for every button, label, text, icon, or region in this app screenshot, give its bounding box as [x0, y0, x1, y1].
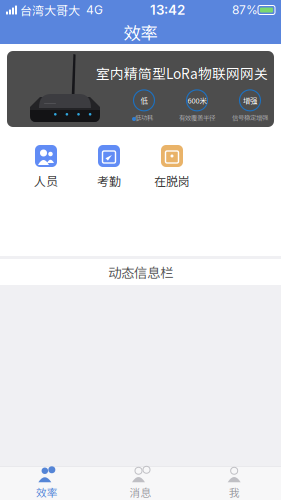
staticText: 低	[140, 95, 147, 106]
staticText: 信号稳定增强	[232, 113, 268, 122]
button[interactable]: 效率	[0, 463, 94, 500]
button[interactable]: 考勤	[79, 145, 139, 189]
button[interactable]: 动态信息栏	[0, 259, 281, 285]
staticText: 消息	[129, 484, 151, 500]
staticText: 考勤	[97, 172, 121, 189]
button[interactable]: 我	[187, 463, 281, 500]
staticText: 87%	[232, 3, 258, 17]
staticText: 效率	[36, 484, 58, 500]
staticText: 人员	[34, 172, 58, 189]
button[interactable]: 消息	[94, 463, 187, 500]
staticText: 室内精简型LoRa物联网网关	[96, 63, 268, 83]
staticText: 低功耗	[135, 113, 153, 122]
staticText: 600米	[187, 95, 206, 106]
staticText: 在脱岗	[154, 172, 190, 189]
staticText: 13:42	[150, 2, 185, 18]
staticText: 我	[229, 484, 240, 500]
staticText: 增强	[243, 95, 257, 106]
button[interactable]: 效率	[0, 20, 281, 44]
button[interactable]: 在脱岗	[142, 145, 202, 189]
staticText: 4G	[80, 3, 103, 17]
staticText: 台湾大哥大	[17, 1, 80, 19]
staticText: 效率	[123, 19, 157, 45]
staticText: 动态信息栏	[108, 262, 173, 282]
staticText: 有效覆盖半径	[179, 113, 215, 122]
button[interactable]: 人员	[16, 145, 76, 189]
